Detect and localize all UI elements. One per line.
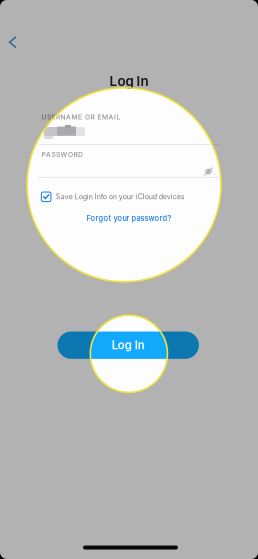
button[interactable]: Back [0, 27, 28, 57]
staticText: Save Login Info on your iCloud devices [56, 192, 185, 201]
button[interactable]: Log In [57, 332, 199, 359]
button[interactable]: Log In [57, 332, 199, 359]
staticText: PASSWORD [41, 150, 83, 159]
staticText: USERNAME OR EMAIL [41, 113, 120, 121]
staticText: Log In [112, 338, 145, 352]
button[interactable]: Show password [197, 161, 219, 181]
staticText: Log In [109, 73, 148, 89]
staticText: Log In [112, 338, 145, 352]
button[interactable]: Forgot your password? [83, 211, 174, 226]
staticText: Log In [109, 73, 148, 89]
staticText: Forgot your password? [86, 214, 171, 223]
staticText: USERNAME OR EMAIL [41, 113, 120, 121]
staticText: PASSWORD [41, 150, 83, 159]
button[interactable]: Back [0, 27, 28, 57]
staticText: Forgot your password? [86, 214, 171, 223]
button[interactable]: Show password [197, 161, 219, 181]
staticText: Save Login Info on your iCloud devices [56, 192, 185, 201]
button[interactable]: Save Login Info on your iCloud devices [39, 190, 187, 204]
button[interactable]: Save Login Info on your iCloud devices [39, 190, 187, 204]
button[interactable]: Forgot your password? [83, 211, 174, 226]
